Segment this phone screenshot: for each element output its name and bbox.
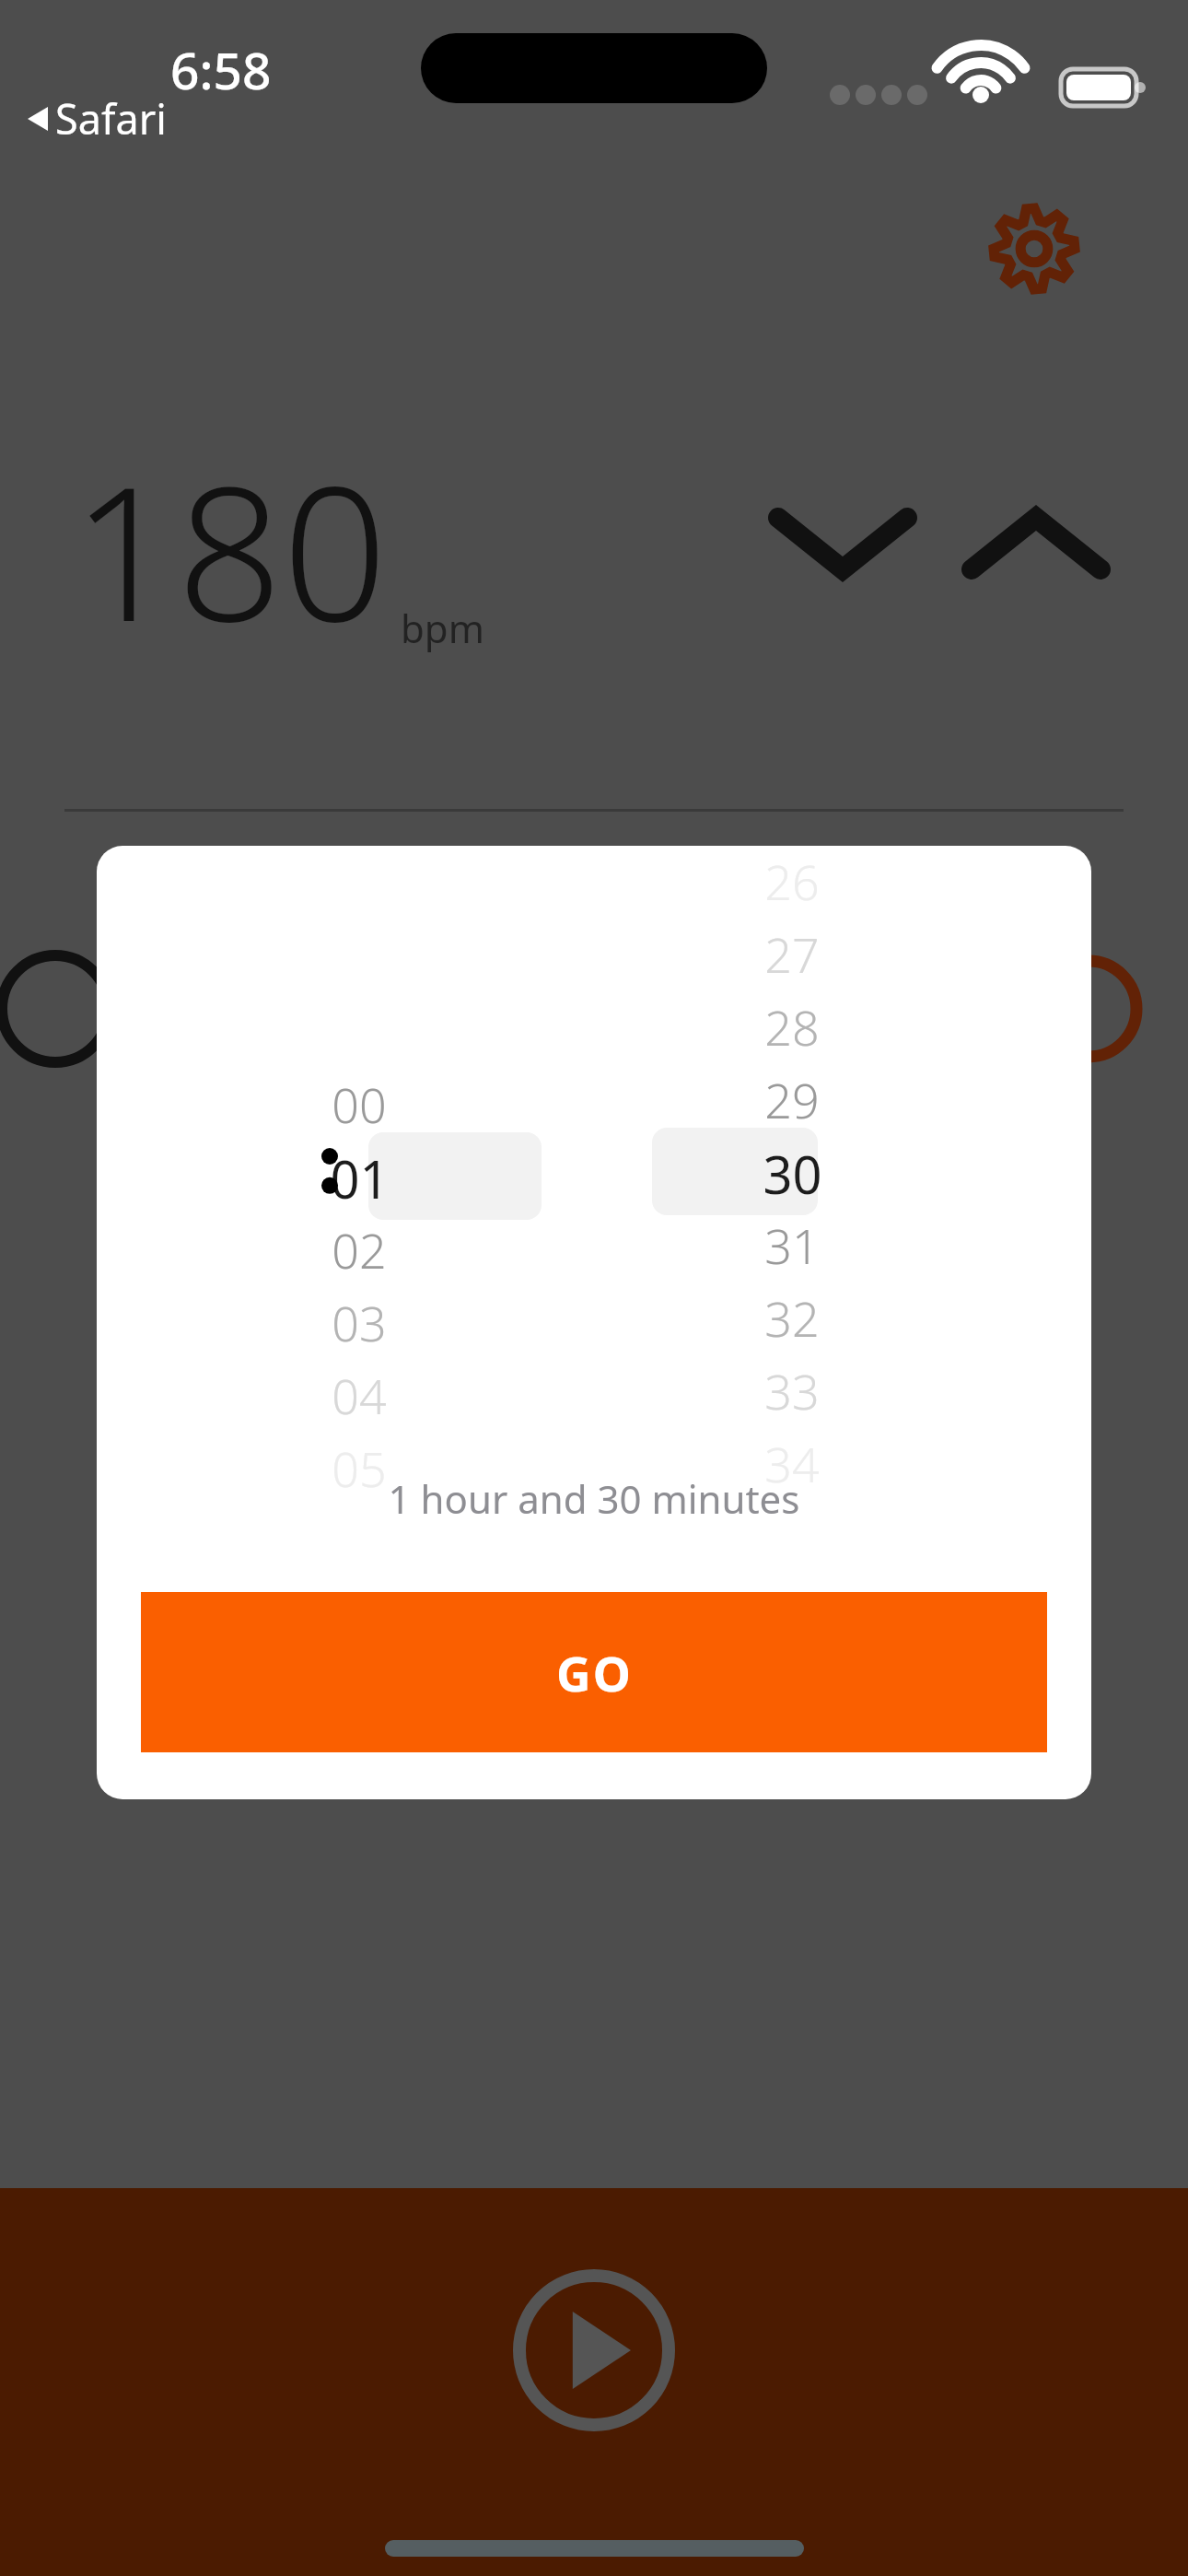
staticText: 30: [763, 1139, 822, 1205]
staticText: 05: [332, 1435, 387, 1501]
button[interactable]: 32: [705, 1284, 879, 1351]
button[interactable]: 33: [705, 1357, 879, 1423]
button[interactable]: 03: [272, 1289, 447, 1355]
button[interactable]: Play: [513, 2269, 675, 2431]
staticText: 34: [764, 1431, 820, 1496]
staticText: 180: [72, 424, 388, 674]
button[interactable]: 27: [705, 920, 879, 987]
staticText: 27: [764, 921, 820, 987]
staticText: GO: [556, 1640, 633, 1705]
staticText: 02: [332, 1217, 387, 1282]
button[interactable]: [368, 1132, 542, 1220]
button[interactable]: 26: [705, 848, 879, 914]
button[interactable]: 04: [272, 1362, 447, 1428]
staticText: 28: [764, 994, 820, 1060]
button[interactable]: Safari: [28, 90, 167, 146]
staticText: 31: [764, 1212, 820, 1278]
button[interactable]: 05: [272, 1434, 447, 1501]
button[interactable]: 02: [272, 1216, 447, 1282]
button[interactable]: 30: [705, 1139, 879, 1205]
button[interactable]: 34: [705, 1430, 879, 1496]
button[interactable]: 28: [705, 993, 879, 1060]
staticText: 03: [332, 1290, 387, 1355]
staticText: 6:58: [170, 35, 272, 104]
staticText: 29: [764, 1067, 820, 1132]
staticText: 04: [332, 1363, 387, 1428]
staticText: 00: [332, 1071, 387, 1137]
button[interactable]: GO: [141, 1592, 1047, 1752]
staticText: 32: [764, 1285, 820, 1351]
staticText: bpm: [401, 602, 484, 654]
button[interactable]: Settings: [984, 198, 1085, 299]
button[interactable]: 31: [705, 1212, 879, 1278]
button[interactable]: [652, 1128, 818, 1215]
button[interactable]: 00: [272, 1071, 447, 1137]
button[interactable]: 01: [272, 1143, 447, 1210]
staticText: 1 hour and 30 minutes: [97, 1472, 1091, 1525]
staticText: 01: [330, 1143, 390, 1210]
button[interactable]: 29: [705, 1066, 879, 1132]
staticText: 26: [764, 849, 820, 914]
staticText: 33: [764, 1358, 820, 1423]
button[interactable]: Decrease: [755, 479, 930, 608]
staticText: Safari: [55, 90, 167, 146]
button[interactable]: Increase: [949, 479, 1124, 608]
